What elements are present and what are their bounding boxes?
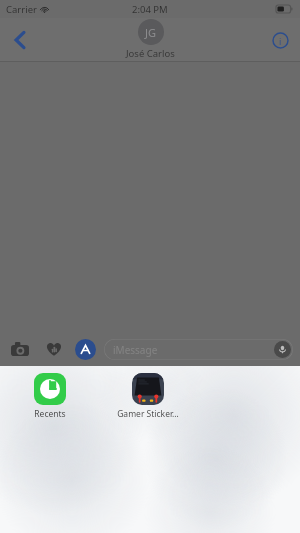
staticText: Gamer Sticker… xyxy=(117,408,179,420)
button[interactable]: JG xyxy=(126,19,175,60)
button[interactable]: Camera xyxy=(7,336,33,362)
staticText: Recents xyxy=(34,408,66,420)
staticText: i xyxy=(279,35,282,47)
staticText: José Carlos xyxy=(126,47,175,60)
button[interactable]: iMessage xyxy=(104,339,293,360)
staticText: 2:04 PM xyxy=(132,3,168,16)
staticText: Carrier xyxy=(6,3,37,16)
staticText: JG xyxy=(145,25,157,40)
button[interactable]: Gamer Sticker… xyxy=(110,373,186,420)
button[interactable]: Digital Touch xyxy=(41,336,67,362)
button[interactable]: Dictate xyxy=(274,341,291,358)
button[interactable]: Recents xyxy=(12,373,88,420)
button[interactable]: Back xyxy=(0,18,40,62)
button[interactable]: App Store xyxy=(75,339,96,360)
staticText: iMessage xyxy=(113,343,158,357)
button[interactable]: Details xyxy=(260,18,300,62)
